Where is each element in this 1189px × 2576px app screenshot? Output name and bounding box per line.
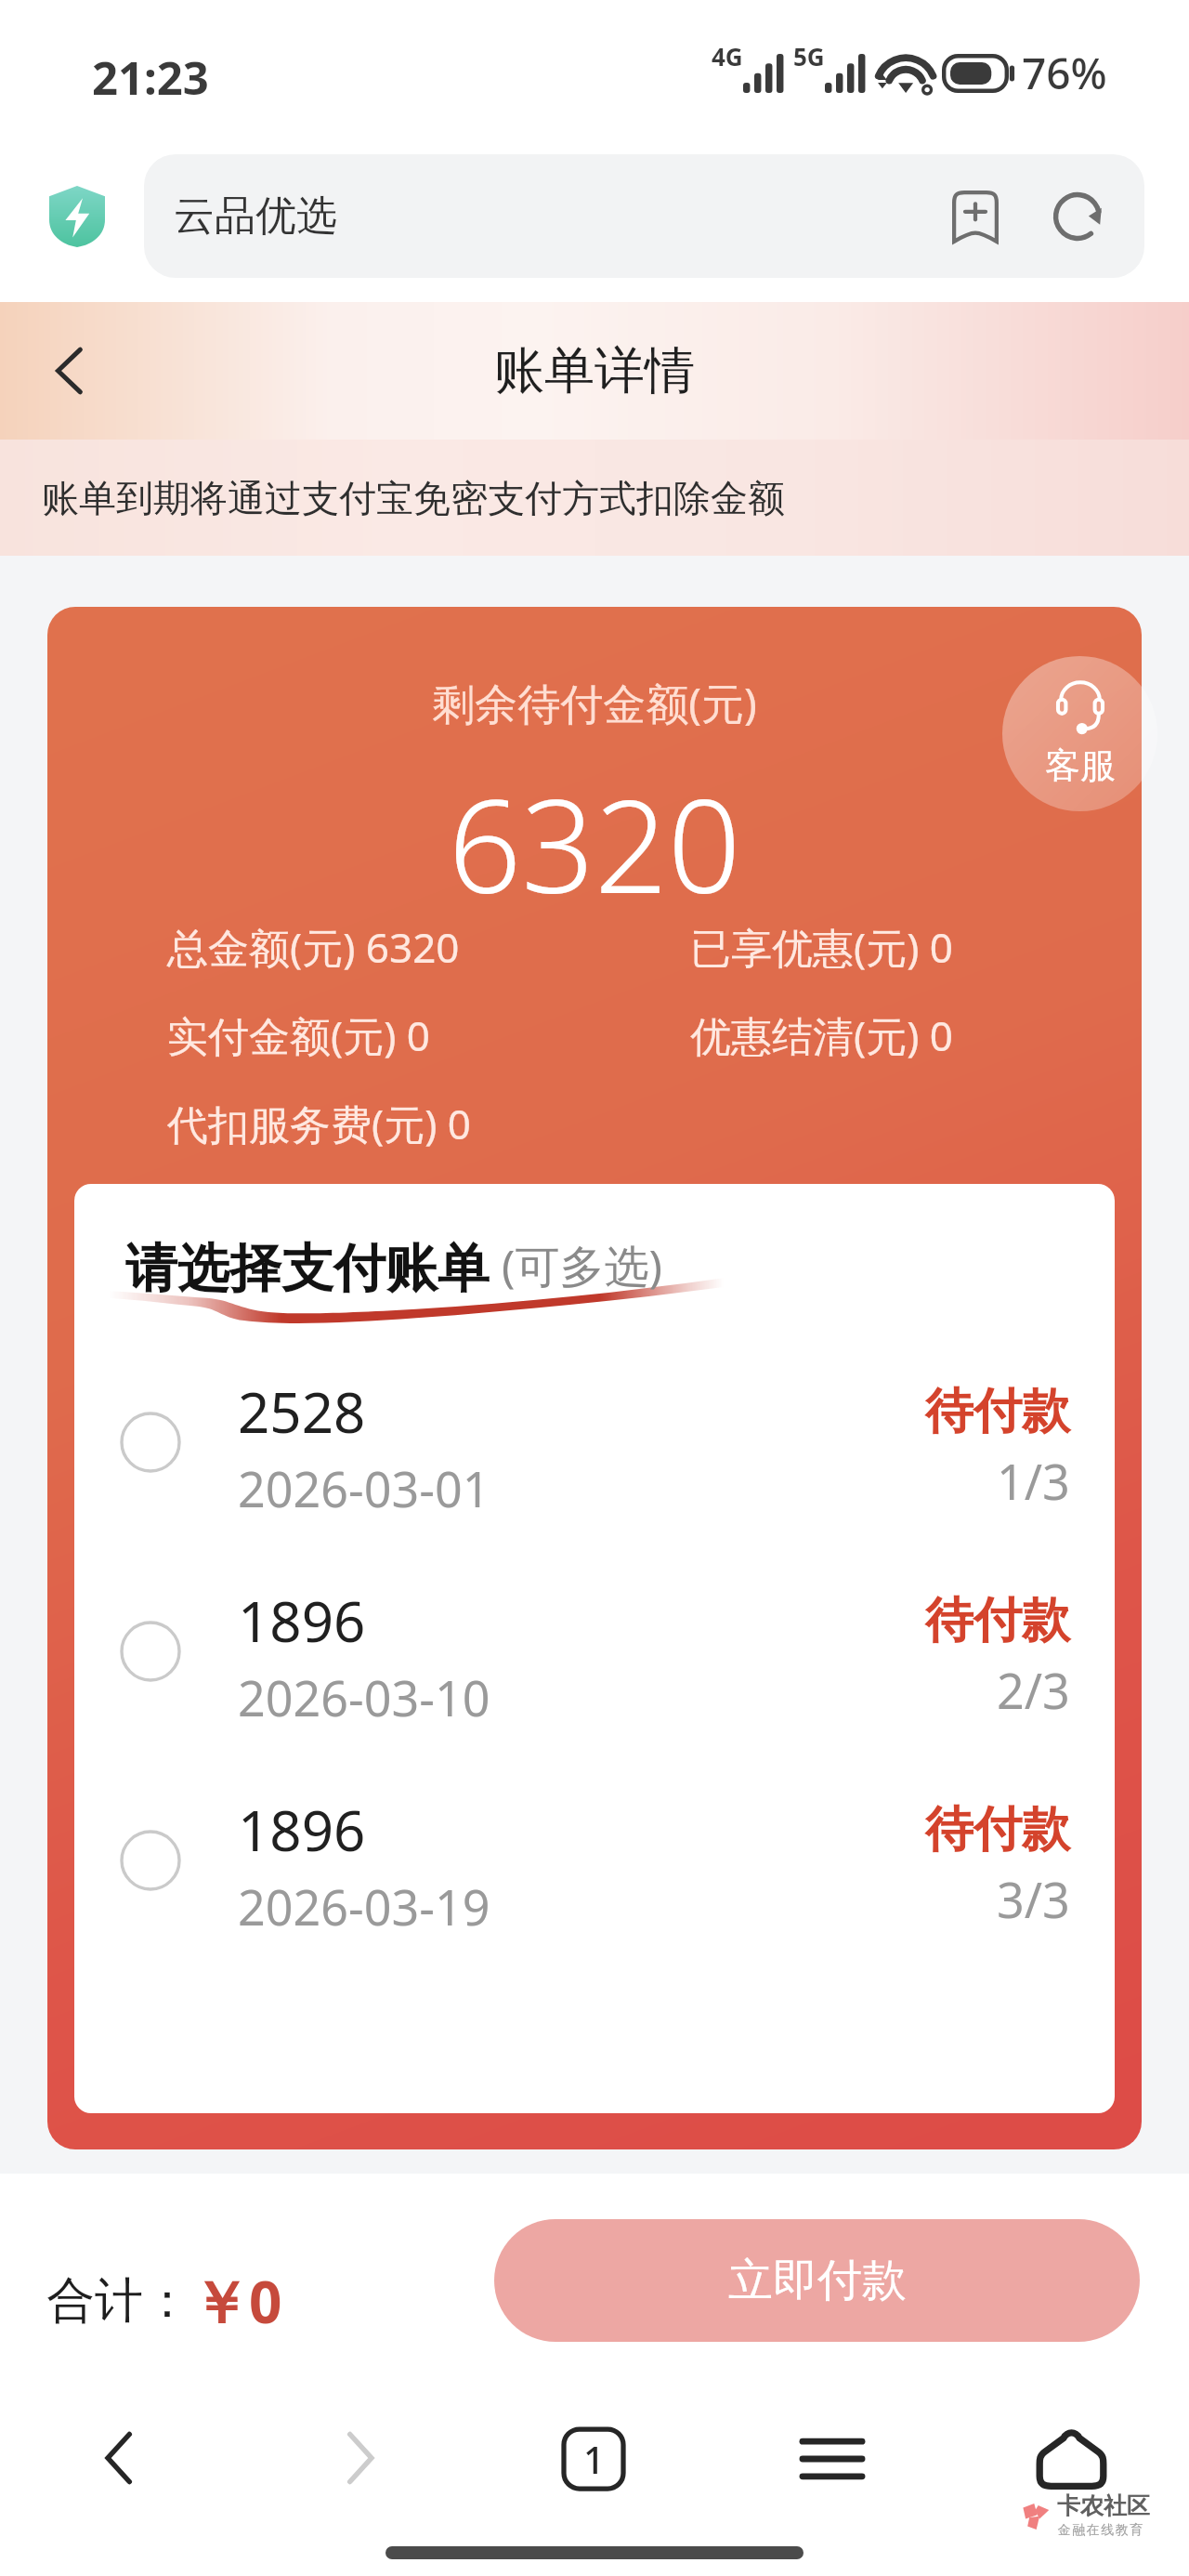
staticText: 2026-03-19 [238, 1873, 490, 1939]
button[interactable]: Customer service [1002, 656, 1157, 811]
staticText: 卡农社区 [1057, 2491, 1150, 2520]
staticText: 2026-03-10 [238, 1664, 490, 1730]
staticText: 6320 [47, 756, 1142, 895]
staticText: 1 [583, 2434, 605, 2484]
staticText: 总金额(元) 6320 [167, 919, 460, 975]
button[interactable]: 1896 [74, 1792, 1115, 1939]
staticText: 4G [712, 40, 743, 72]
button[interactable]: Tabs [529, 2394, 659, 2524]
staticText: 客服 [1045, 743, 1116, 788]
button[interactable]: Home [1006, 2393, 1136, 2523]
button[interactable]: Refresh [1039, 177, 1117, 256]
staticText: (可多选) [502, 1235, 662, 1296]
staticText: 1896 [238, 1583, 366, 1659]
staticText: 3/3 [997, 1866, 1070, 1932]
staticText: 2026-03-01 [238, 1455, 490, 1521]
staticText: ￥0 [191, 2262, 282, 2341]
staticText: 待付款 [925, 1799, 1070, 1860]
button[interactable]: 立即付款 [494, 2219, 1140, 2342]
button[interactable]: 云品优选 [144, 154, 1144, 278]
staticText: 代扣服务费(元) 0 [167, 1096, 472, 1151]
staticText: 2/3 [997, 1657, 1070, 1723]
staticText: 2528 [238, 1373, 366, 1450]
staticText: 1896 [238, 1792, 366, 1868]
staticText: 合计： [46, 2270, 191, 2332]
button[interactable]: Menu [767, 2394, 897, 2524]
staticText: 优惠结清(元) 0 [690, 1007, 954, 1063]
staticText: 实付金额(元) 0 [167, 1007, 431, 1063]
staticText: 待付款 [925, 1381, 1070, 1442]
button[interactable]: 1896 [74, 1583, 1115, 1730]
staticText: 76% [1022, 44, 1107, 102]
staticText: 已享优惠(元) 0 [690, 919, 954, 975]
staticText: 待付款 [925, 1590, 1070, 1651]
staticText: 金融在线教育 [1057, 2522, 1143, 2539]
button[interactable]: Back [56, 2393, 186, 2523]
staticText: 账单到期将通过支付宝免密支付方式扣除金额 [42, 475, 785, 521]
button[interactable]: 2528 [74, 1373, 1115, 1521]
staticText: 账单详情 [494, 339, 695, 402]
staticText: 剩余待付金额(元) [47, 674, 1142, 732]
button[interactable]: Back [26, 326, 115, 415]
staticText: 请选择支付账单 [125, 1236, 490, 1302]
staticText: 立即付款 [728, 2253, 907, 2308]
staticText: 1/3 [997, 1448, 1070, 1514]
staticText: 5G [793, 40, 825, 72]
button[interactable]: Add bookmark [936, 177, 1014, 256]
staticText: 云品优选 [174, 191, 337, 242]
staticText: 21:23 [92, 46, 209, 109]
button[interactable]: Forward [294, 2393, 424, 2523]
